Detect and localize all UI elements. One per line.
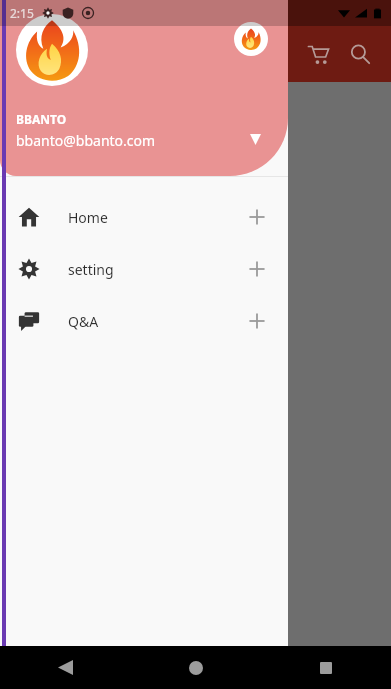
button[interactable]: Search	[339, 33, 381, 75]
staticText: bbanto@bbanto.com	[16, 131, 156, 150]
button[interactable]: setting	[0, 243, 288, 295]
button[interactable]: Flame badge	[234, 22, 268, 56]
staticText: 2:15	[10, 5, 34, 21]
button[interactable]: Cart	[297, 33, 339, 75]
staticText: setting	[68, 260, 114, 279]
button[interactable]: Home	[0, 191, 288, 243]
button[interactable]: Back	[0, 646, 131, 689]
staticText: Home	[68, 208, 108, 227]
staticText: BBANTO	[16, 111, 67, 127]
button[interactable]: Flame badge	[0, 0, 288, 176]
button[interactable]: Q&A	[0, 295, 288, 347]
staticText: Q&A	[68, 312, 99, 331]
button[interactable]: Home	[131, 646, 261, 689]
button[interactable]: Switch account	[242, 126, 268, 152]
button[interactable]: Recents	[261, 646, 391, 689]
